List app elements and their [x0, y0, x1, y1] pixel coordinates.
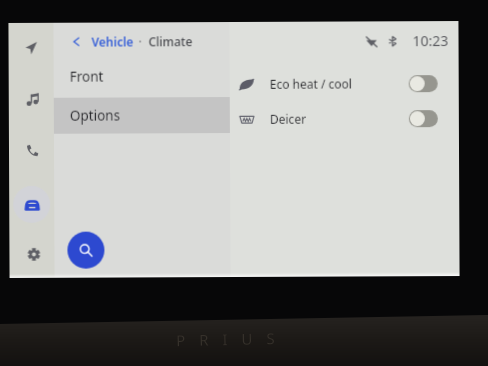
- staticText: 10:23: [412, 31, 449, 50]
- button[interactable]: Eco heat / cool: [230, 66, 459, 101]
- staticText: Vehicle: [91, 33, 134, 50]
- staticText: ·: [138, 33, 143, 49]
- staticText: PRIUS: [176, 328, 289, 350]
- staticText: Deicer: [270, 111, 307, 127]
- button[interactable]: Options: [54, 97, 230, 134]
- button[interactable]: Deicer: [230, 101, 459, 136]
- button[interactable]: Phone: [10, 130, 55, 170]
- button[interactable]: Vehicle: [71, 29, 193, 54]
- staticText: Eco heat / cool: [270, 75, 353, 92]
- staticText: Options: [70, 106, 121, 125]
- staticText: Front: [70, 68, 104, 86]
- button[interactable]: Vehicle: [13, 186, 50, 223]
- button[interactable]: Navigation: [7, 28, 53, 68]
- staticText: Climate: [148, 33, 193, 49]
- button[interactable]: Settings: [11, 234, 57, 274]
- button[interactable]: Search: [67, 232, 105, 269]
- button[interactable]: Front: [54, 58, 230, 95]
- button[interactable]: Media: [11, 80, 56, 120]
